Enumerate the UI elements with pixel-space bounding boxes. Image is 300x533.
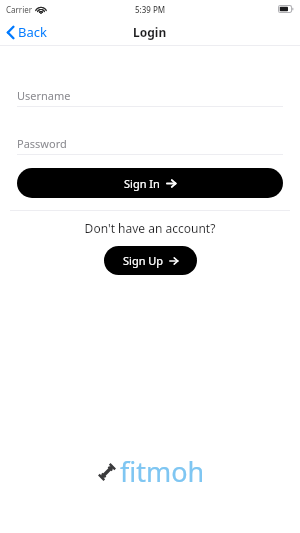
staticText: 5:39 PM — [135, 4, 166, 15]
button[interactable]: Username — [17, 88, 283, 107]
staticText: Username — [17, 88, 71, 103]
staticText: Login — [133, 24, 167, 40]
other: Back — [7, 26, 14, 39]
button[interactable]: Back — [0, 19, 57, 45]
staticText: Password — [17, 136, 67, 151]
other: Submit — [166, 178, 177, 189]
other: Submit — [169, 256, 179, 266]
staticText: Sign Up — [123, 253, 164, 268]
staticText: Don't have an account? — [0, 220, 300, 236]
staticText: fitmoh — [120, 453, 205, 490]
button[interactable]: Password — [17, 136, 283, 155]
button[interactable]: Sign In — [17, 168, 283, 198]
staticText: Back — [18, 23, 47, 41]
staticText: Sign In — [124, 176, 160, 191]
button[interactable]: Sign Up — [104, 246, 197, 275]
staticText: Carrier — [6, 4, 33, 15]
